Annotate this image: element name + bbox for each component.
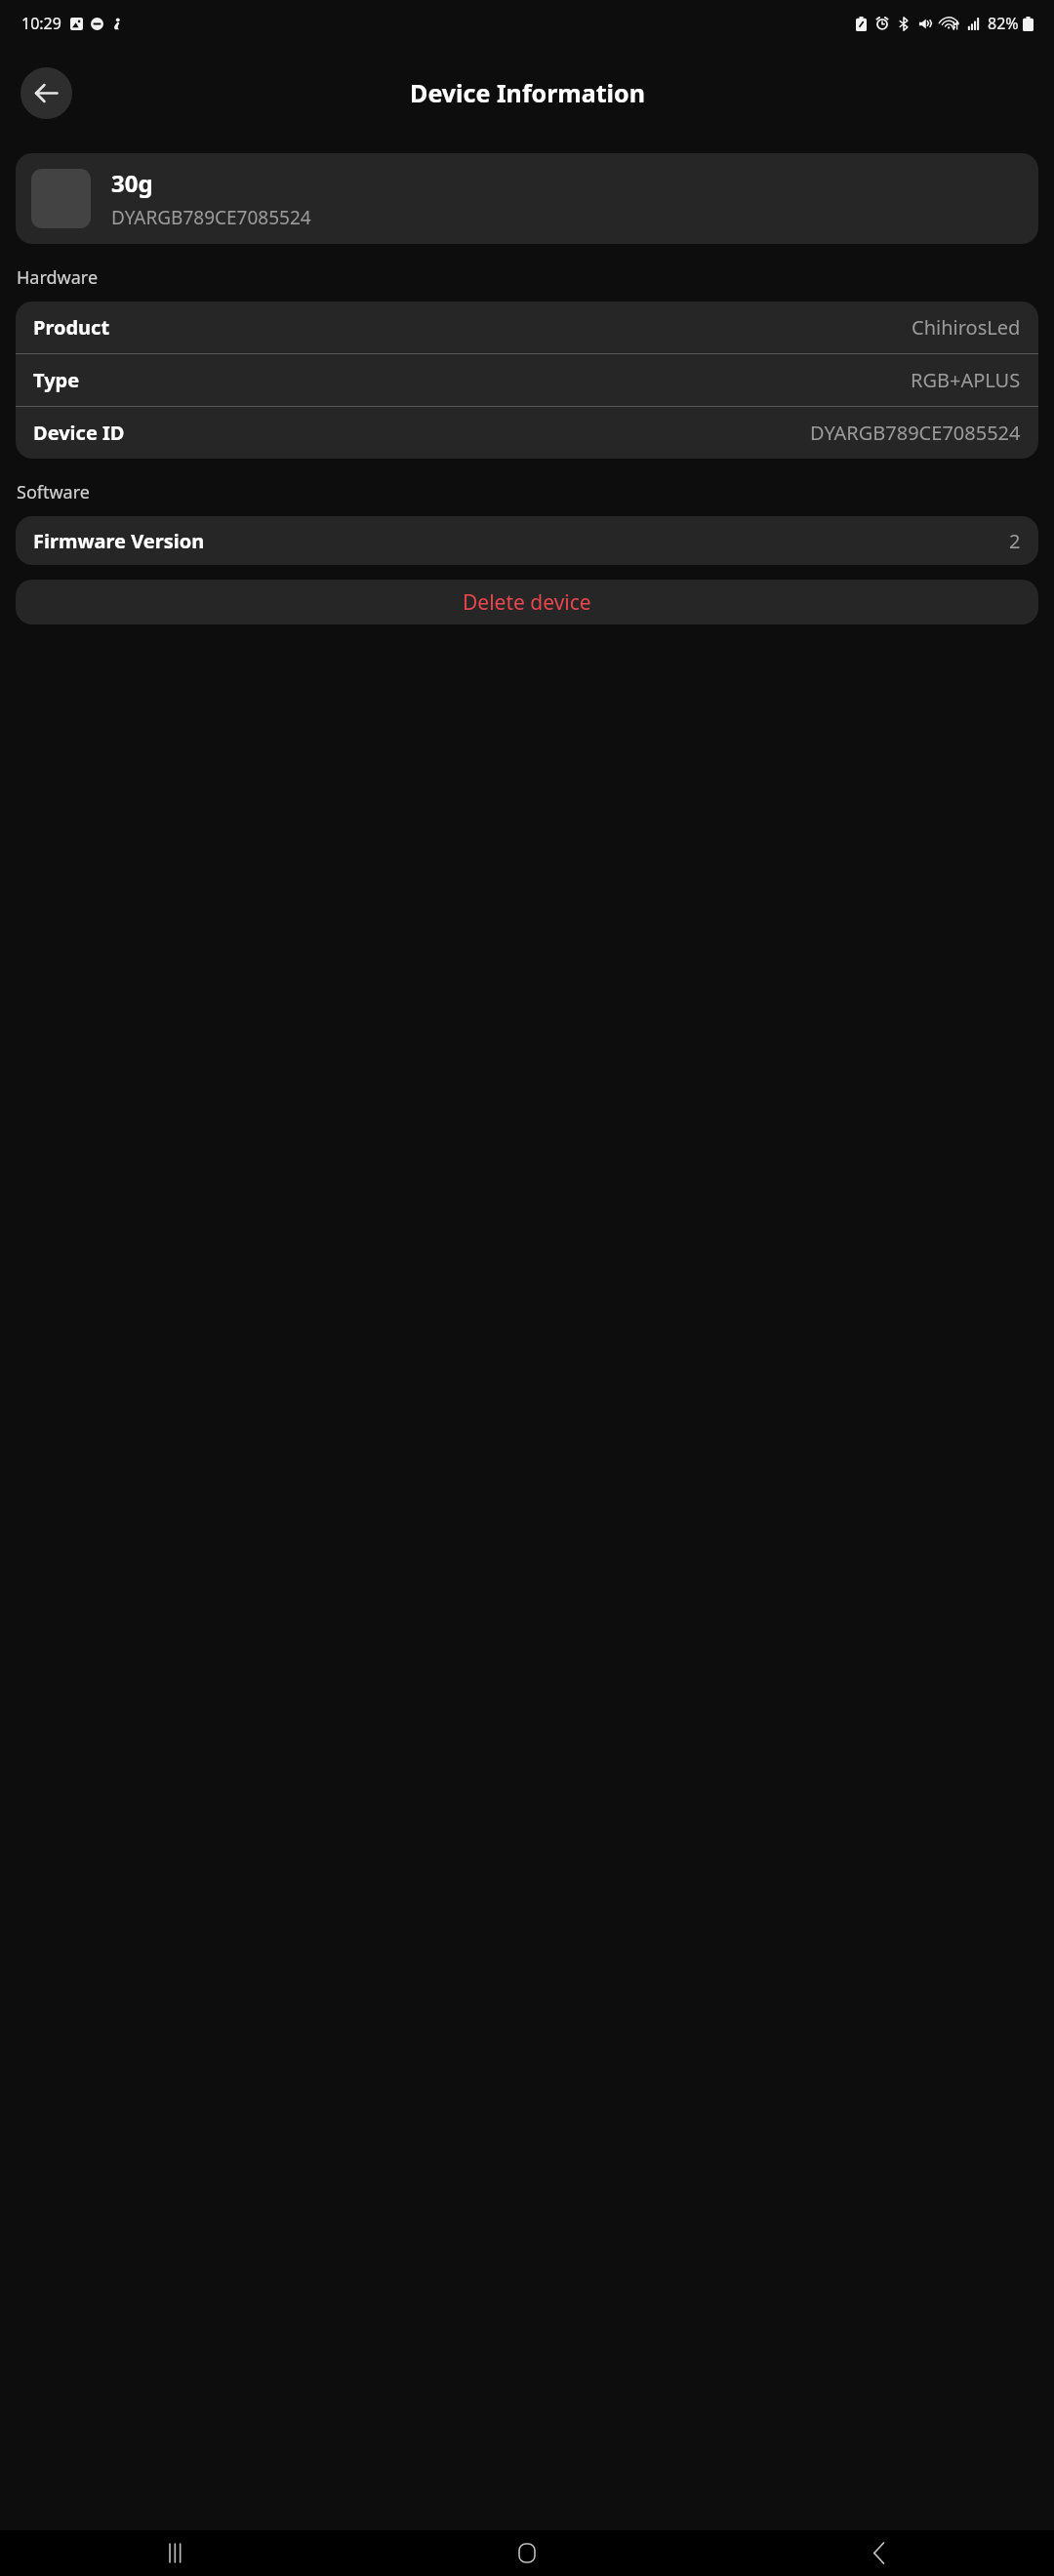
button[interactable]: Delete device	[16, 580, 1038, 624]
staticText: Product	[33, 314, 110, 341]
button[interactable]: Type	[16, 354, 1038, 406]
staticText: Software	[17, 480, 90, 504]
staticText: 2	[1009, 528, 1021, 554]
button[interactable]: Product	[16, 302, 1038, 353]
button[interactable]: Device ID	[16, 407, 1038, 459]
button[interactable]: 30g	[16, 153, 1038, 244]
staticText: 10:29	[21, 13, 61, 34]
staticText: Firmware Version	[33, 528, 205, 554]
staticText: 30g	[111, 167, 153, 199]
button[interactable]: Back	[20, 67, 72, 119]
staticText: Type	[33, 367, 80, 393]
staticText: Device ID	[33, 420, 125, 446]
button[interactable]: Home	[351, 2530, 703, 2576]
staticText: 82%	[988, 13, 1019, 34]
button[interactable]: Recents	[0, 2530, 351, 2576]
staticText: Device Information	[410, 76, 645, 109]
staticText: Delete device	[463, 588, 591, 617]
staticText: ChihirosLed	[912, 314, 1021, 341]
button[interactable]: Firmware Version	[16, 516, 1038, 565]
staticText: DYARGB789CE7085524	[810, 420, 1021, 446]
button[interactable]: Back	[703, 2530, 1054, 2576]
staticText: Hardware	[17, 265, 99, 290]
staticText: DYARGB789CE7085524	[111, 205, 311, 230]
staticText: RGB+APLUS	[911, 367, 1021, 393]
